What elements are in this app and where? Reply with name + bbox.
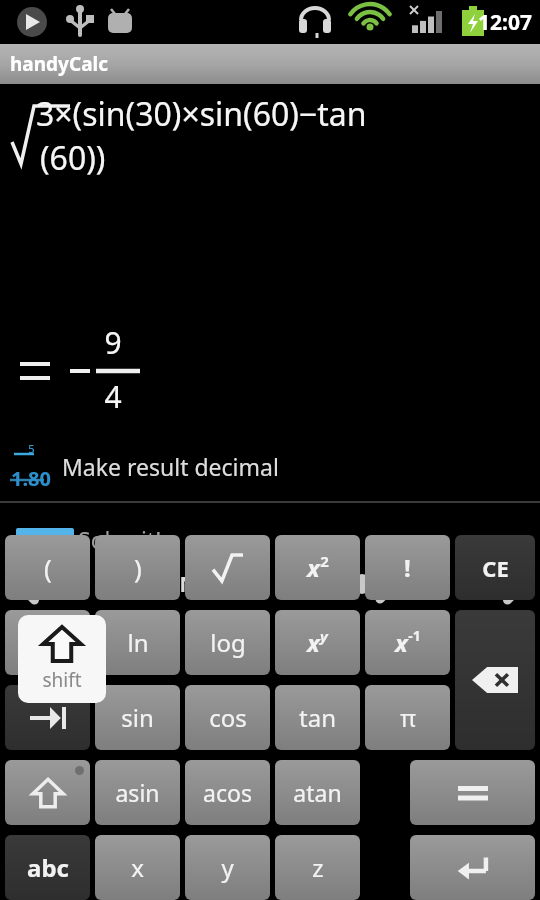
button[interactable]: 5 bbox=[0, 432, 540, 500]
staticText: 4 bbox=[104, 376, 122, 417]
button[interactable]: cos bbox=[185, 685, 270, 750]
staticText: ( bbox=[44, 550, 52, 585]
staticText: x bbox=[307, 626, 320, 659]
staticText: Make result decimal bbox=[62, 451, 279, 482]
button[interactable]: Shift bbox=[5, 760, 90, 825]
button[interactable]: INT bbox=[171, 570, 209, 599]
staticText: acos bbox=[203, 777, 252, 808]
button[interactable]: CE bbox=[455, 535, 535, 600]
button[interactable]: ! bbox=[365, 535, 450, 600]
button[interactable]: tan bbox=[275, 685, 360, 750]
button[interactable]: Enter bbox=[410, 835, 535, 900]
button[interactable]: DEG bbox=[225, 570, 268, 599]
staticText: (60)) bbox=[40, 136, 106, 180]
staticText: ln bbox=[127, 626, 149, 659]
staticText: handyCalc bbox=[10, 51, 108, 77]
button[interactable]: x inverse bbox=[365, 610, 450, 675]
staticText: sin bbox=[121, 701, 154, 734]
button[interactable]: acos bbox=[185, 760, 270, 825]
staticText: 1.80 bbox=[11, 465, 51, 492]
button[interactable]: Square root bbox=[185, 535, 270, 600]
staticText: 3×(sin(30)×sin(60)−tan bbox=[36, 92, 367, 136]
button[interactable]: Backspace bbox=[455, 610, 535, 750]
button[interactable]: Step forward bbox=[410, 562, 480, 606]
staticText: Solve it! bbox=[78, 524, 162, 555]
staticText: 2 bbox=[320, 551, 329, 571]
button[interactable]: sin bbox=[95, 685, 180, 750]
button[interactable]: abc bbox=[5, 835, 90, 900]
button[interactable]: atan bbox=[275, 760, 360, 825]
button[interactable]: Equals bbox=[410, 760, 535, 825]
button[interactable]: Shift tab bbox=[5, 610, 90, 675]
button[interactable]: Solve it! bbox=[0, 516, 540, 562]
button[interactable]: asin bbox=[95, 760, 180, 825]
staticText: 5 bbox=[28, 441, 35, 456]
staticText: 4/24 bbox=[110, 570, 155, 599]
staticText: ! bbox=[404, 551, 411, 584]
button[interactable]: Previous bbox=[0, 562, 55, 606]
staticText: CE bbox=[482, 553, 509, 583]
staticText: cos bbox=[209, 701, 247, 734]
button[interactable]: π bbox=[365, 685, 450, 750]
staticText: π bbox=[400, 701, 416, 734]
button[interactable]: Tab bbox=[5, 685, 90, 750]
button[interactable]: ) bbox=[95, 535, 180, 600]
button[interactable]: x squared bbox=[275, 535, 360, 600]
staticText: 12:07 bbox=[478, 8, 532, 37]
staticText: abc bbox=[27, 851, 69, 884]
other: Shift key preview bbox=[18, 615, 106, 703]
button[interactable]: x bbox=[95, 835, 180, 900]
staticText: 9 bbox=[104, 322, 122, 363]
staticText: x bbox=[131, 851, 144, 884]
staticText: DEG bbox=[225, 570, 268, 599]
staticText: z bbox=[312, 851, 324, 884]
staticText: x bbox=[395, 626, 408, 659]
staticText: INT bbox=[171, 570, 209, 599]
button[interactable]: Next bbox=[480, 562, 540, 606]
button[interactable]: log bbox=[185, 610, 270, 675]
button[interactable]: y bbox=[185, 835, 270, 900]
staticText: x bbox=[307, 551, 320, 584]
staticText: y bbox=[320, 626, 328, 646]
button[interactable]: x to the power y bbox=[275, 610, 360, 675]
staticText: -1 bbox=[408, 626, 421, 645]
staticText: log bbox=[210, 626, 246, 659]
staticText: atan bbox=[293, 777, 342, 808]
staticText: ) bbox=[134, 550, 142, 585]
button[interactable]: ( bbox=[5, 535, 90, 600]
staticText: y bbox=[221, 851, 234, 884]
button[interactable]: z bbox=[275, 835, 360, 900]
staticText: tan bbox=[299, 701, 336, 734]
staticText: asin bbox=[115, 777, 160, 808]
staticText: shift bbox=[42, 667, 82, 693]
button[interactable]: ln bbox=[95, 610, 180, 675]
